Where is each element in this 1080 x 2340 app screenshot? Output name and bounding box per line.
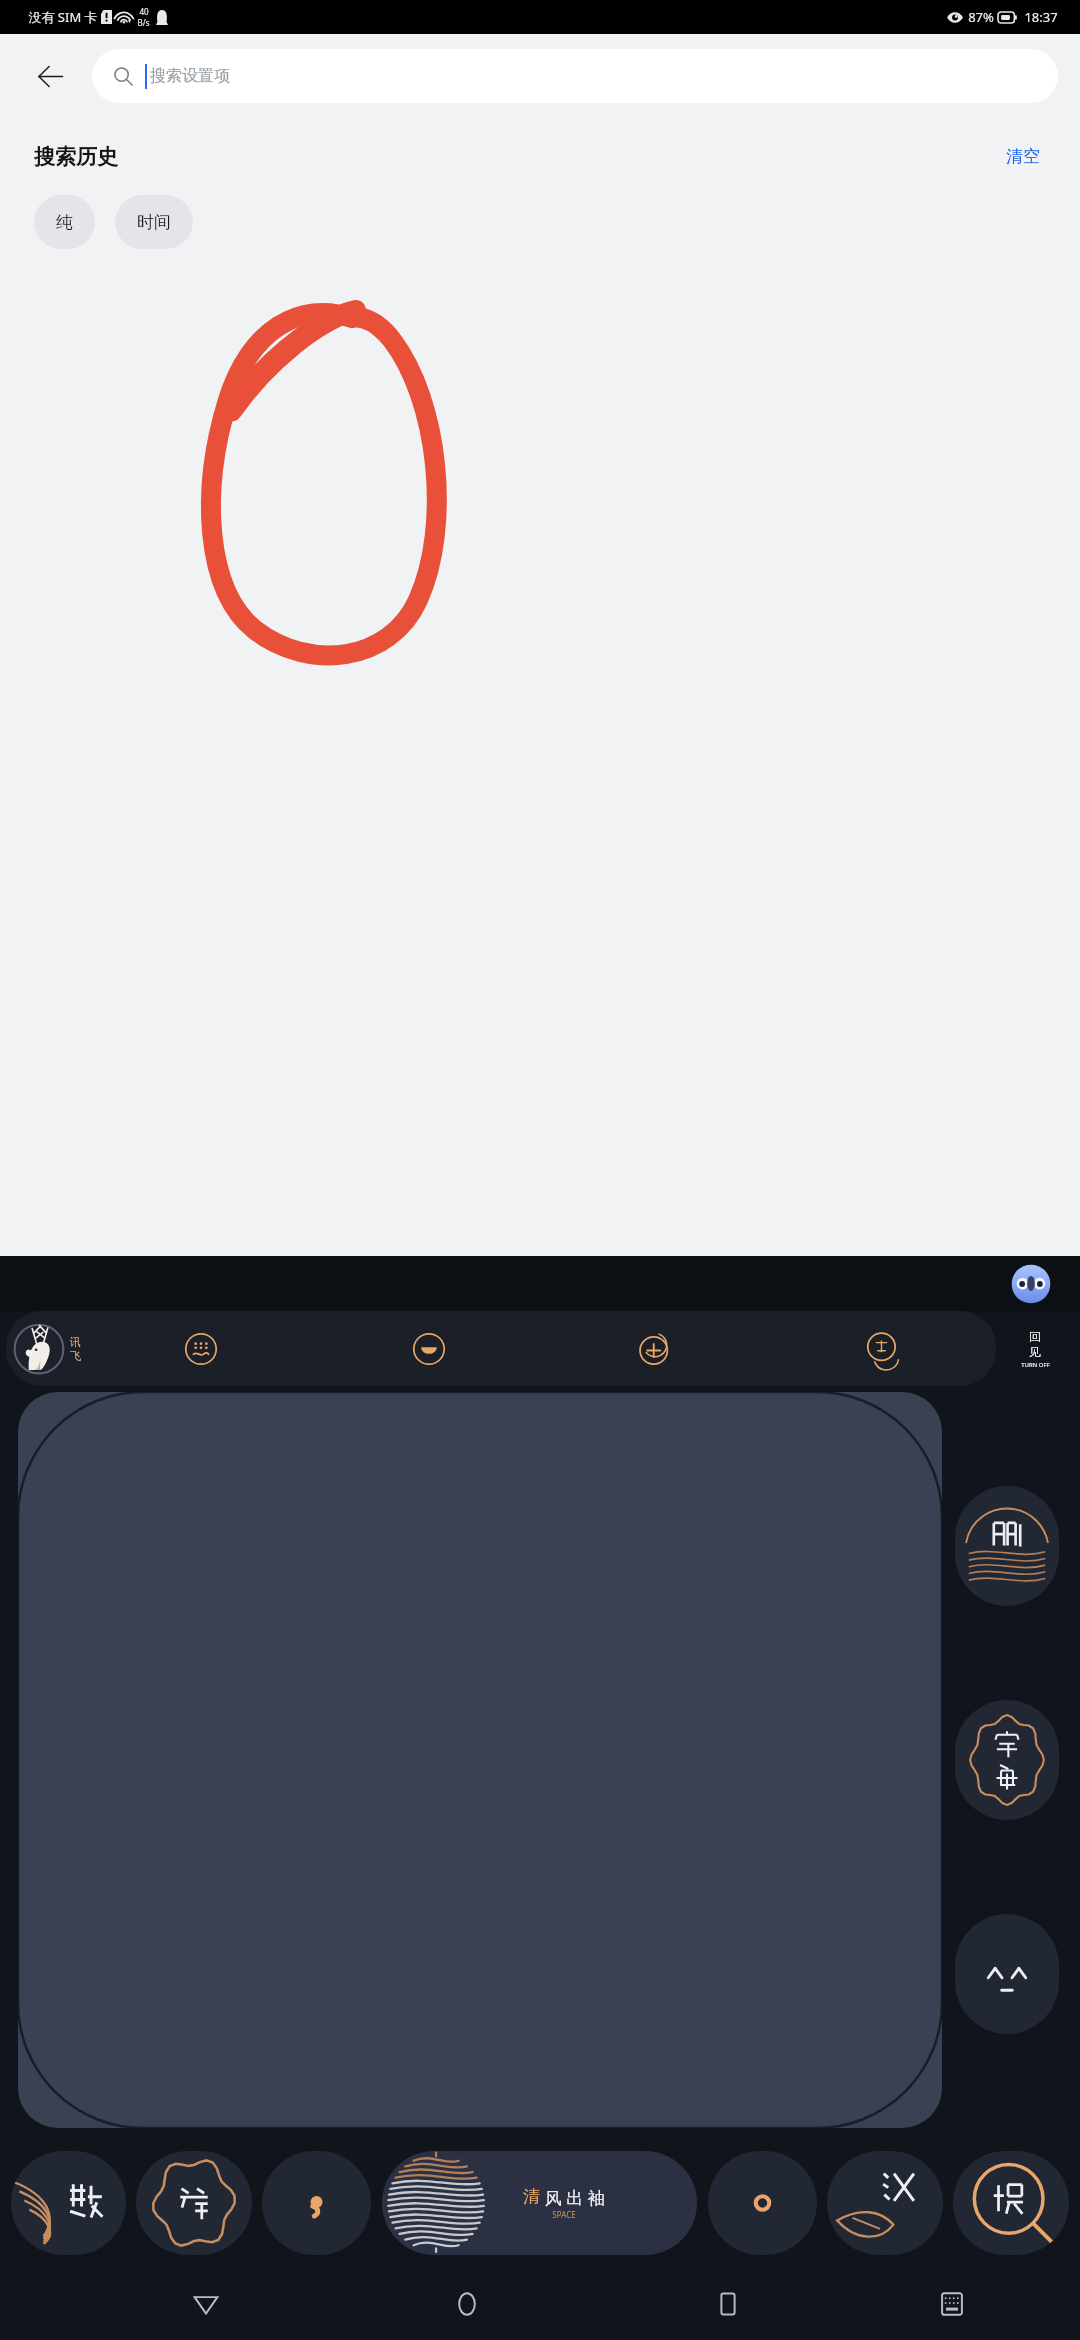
button[interactable]: Home [434, 2271, 500, 2337]
staticText: 见 [1029, 1344, 1041, 1359]
button[interactable]: Delete [955, 1486, 1059, 1606]
button[interactable]: Search [953, 2151, 1069, 2255]
button[interactable]: 清空 [1000, 142, 1046, 171]
staticText: SPACE [552, 2209, 576, 2220]
staticText: 18:37 [1024, 8, 1058, 26]
button[interactable]: 搜索设置项 [92, 49, 1058, 103]
button[interactable]: Back [173, 2271, 239, 2337]
staticText: 时间 [137, 212, 171, 233]
button[interactable]: Numbers [11, 2151, 126, 2255]
staticText: 清空 [1006, 146, 1040, 167]
button[interactable]: Theme [315, 1311, 542, 1386]
button[interactable]: 清 [382, 2151, 697, 2255]
staticText: TURN OFF [1021, 1361, 1050, 1369]
button[interactable]: Symbols [136, 2151, 252, 2255]
staticText: 回 [1029, 1329, 1041, 1344]
staticText: 清 [523, 2186, 540, 2207]
button[interactable]: Recents [695, 2271, 761, 2337]
staticText: 搜索设置项 [150, 66, 230, 86]
button[interactable]: Period [708, 2151, 817, 2255]
staticText: 40 [139, 6, 149, 17]
button[interactable]: 时间 [115, 195, 193, 249]
button[interactable]: Emoticon [955, 1914, 1059, 2034]
button[interactable]: Keyboard layout [87, 1311, 315, 1386]
staticText: B/s [137, 17, 150, 28]
staticText: 讯 [70, 1335, 81, 1349]
staticText: 搜索历史 [34, 144, 118, 170]
button[interactable]: 纯 [34, 195, 95, 249]
staticText: 纯 [56, 212, 73, 233]
button[interactable]: Comma [262, 2151, 371, 2255]
button[interactable]: Letters [955, 1700, 1059, 1820]
button[interactable]: Assistant [1010, 1263, 1052, 1305]
button[interactable] [18, 1392, 942, 2128]
staticText: 87% [968, 8, 994, 26]
staticText: 飞 [70, 1349, 81, 1363]
button[interactable]: Chinese [827, 2151, 943, 2255]
button[interactable]: Back [24, 50, 76, 102]
button[interactable]: Translate [769, 1311, 996, 1386]
button[interactable]: Keyboard [919, 2271, 985, 2337]
button[interactable]: 回 [996, 1311, 1074, 1386]
button[interactable]: 讯 [6, 1320, 87, 1378]
staticText: 风 出 袖 [540, 2186, 605, 2209]
staticText: 没有 SIM 卡 [28, 8, 98, 26]
button[interactable]: Add [542, 1311, 769, 1386]
